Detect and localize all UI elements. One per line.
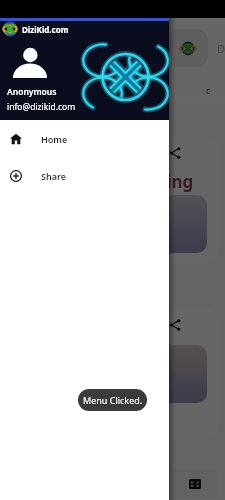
- button[interactable]: Open navigation menu: [167, 29, 208, 67]
- staticText: Share: [41, 170, 66, 182]
- button[interactable]: Home: [0, 120, 169, 157]
- button[interactable]: Share: [0, 157, 169, 194]
- staticText: Home: [41, 133, 68, 145]
- button[interactable]: Share: [160, 138, 190, 168]
- staticText: Anonymous: [7, 86, 57, 98]
- staticText: info@dizikid.com: [7, 101, 76, 113]
- button[interactable]: Share: [8, 308, 217, 440]
- button[interactable]: c: [206, 84, 211, 96]
- button[interactable]: Trending: [4, 84, 42, 96]
- button[interactable]: Ad: [171, 470, 218, 497]
- staticText: DiziKid.com: [217, 41, 225, 56]
- button[interactable]: Share: [8, 136, 217, 263]
- staticText: What is the meaning of Dreaming: [18, 170, 207, 193]
- staticText: DiziKid.com: [22, 24, 69, 35]
- button[interactable]: Share: [160, 310, 190, 340]
- staticText: Menu Clicked.: [83, 394, 143, 406]
